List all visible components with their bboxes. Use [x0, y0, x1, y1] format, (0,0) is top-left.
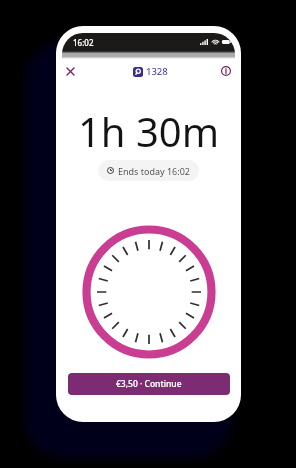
staticText: 1h 30m	[62, 104, 235, 158]
staticText: Ends today 16:02	[118, 165, 190, 177]
button[interactable]: Info	[217, 62, 235, 80]
staticText: 1328	[146, 65, 168, 78]
staticText: 16:02	[73, 37, 94, 48]
button[interactable]: Ends today 16:02	[98, 160, 199, 181]
staticText: €3,50 · Continue	[116, 378, 182, 390]
button[interactable]: €3,50 · Continue	[68, 373, 230, 395]
button[interactable]: 1328	[133, 65, 168, 78]
button[interactable]: Close	[62, 63, 79, 80]
